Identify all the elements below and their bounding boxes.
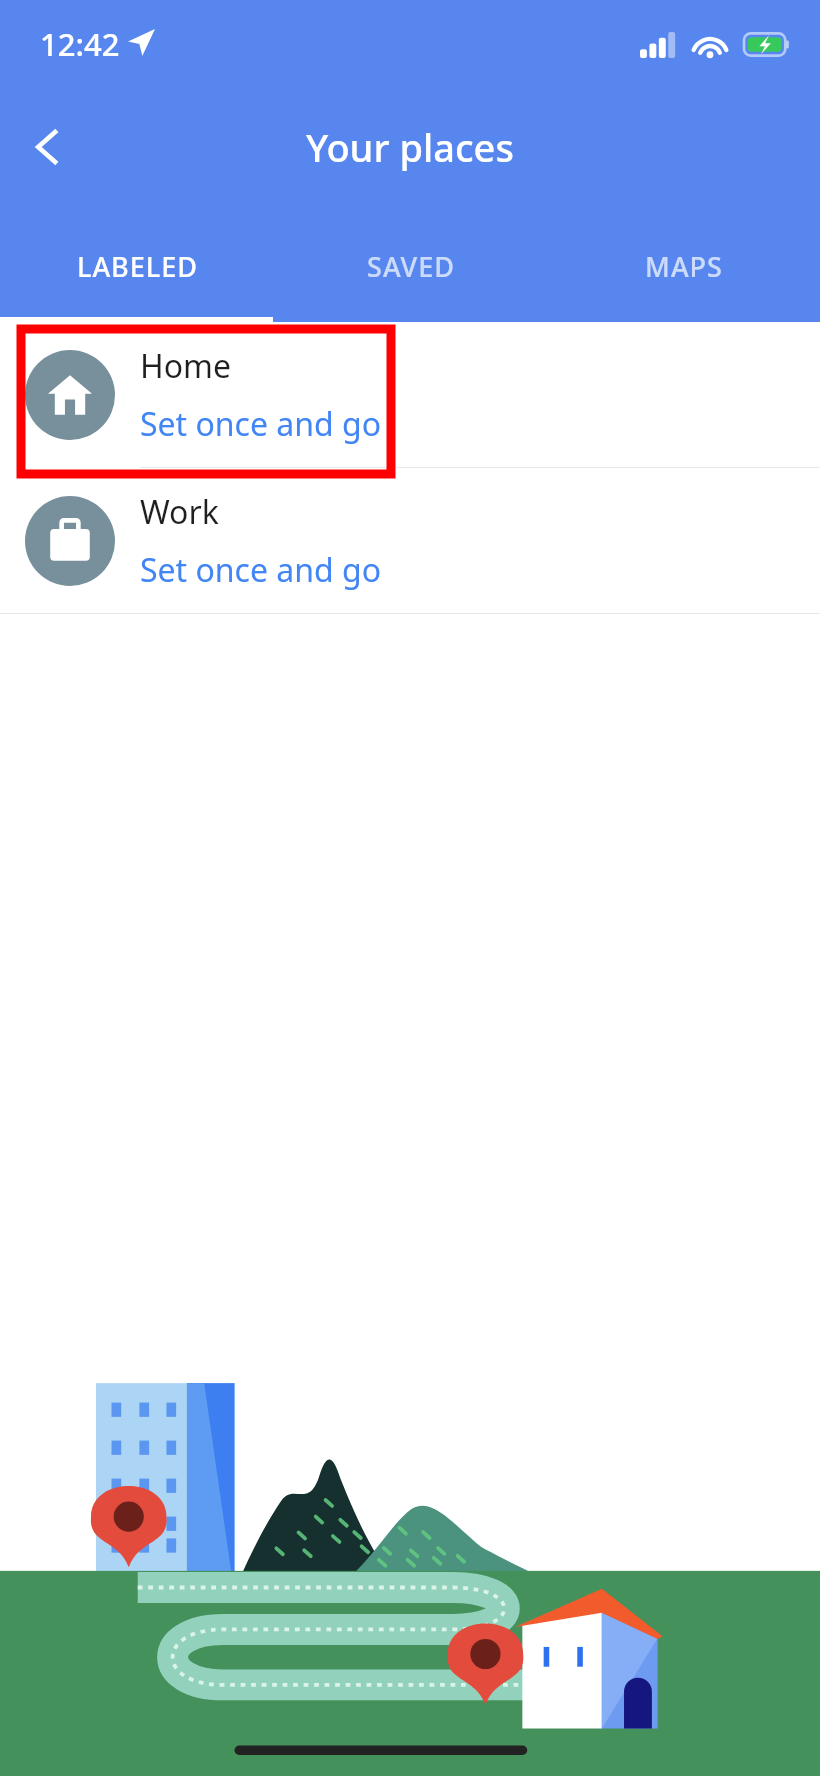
staticText: MAPS bbox=[645, 248, 723, 285]
button[interactable]: Back bbox=[14, 114, 80, 180]
staticText: LABELED bbox=[77, 248, 198, 285]
button[interactable]: LABELED bbox=[0, 210, 274, 322]
button[interactable]: SAVED bbox=[274, 210, 547, 322]
staticText: 12:42 bbox=[40, 23, 120, 65]
staticText: Work bbox=[140, 490, 219, 534]
staticText: Home bbox=[140, 344, 232, 388]
staticText: Your places bbox=[306, 121, 514, 173]
button[interactable]: Work bbox=[0, 468, 820, 613]
button[interactable]: MAPS bbox=[547, 210, 820, 322]
staticText: Set once and go bbox=[140, 402, 382, 446]
staticText: SAVED bbox=[367, 248, 455, 285]
button[interactable]: Home bbox=[0, 322, 820, 467]
staticText: Set once and go bbox=[140, 548, 382, 592]
